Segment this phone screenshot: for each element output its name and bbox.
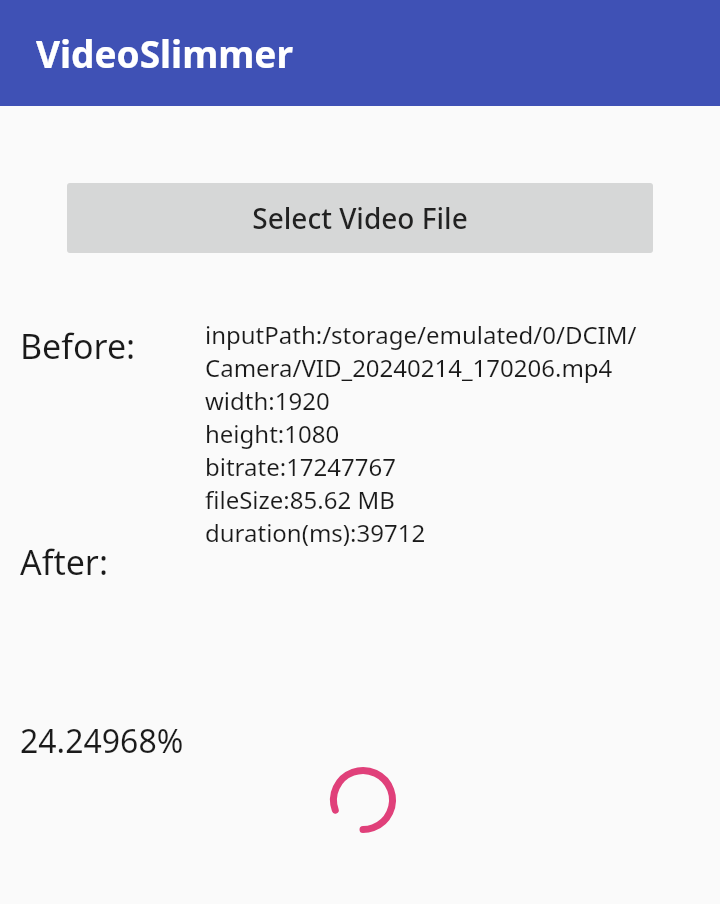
staticText: 24.24968% (20, 719, 184, 763)
staticText: fileSize:85.62 MB (205, 483, 395, 516)
staticText: Camera/VID_20240214_170206.mp4 (205, 351, 613, 384)
button[interactable]: Select Video File (67, 183, 653, 253)
staticText: inputPath:/storage/emulated/0/DCIM/ (205, 318, 637, 351)
staticText: bitrate:17247767 (205, 450, 396, 483)
staticText: height:1080 (205, 417, 340, 450)
staticText: Before: (20, 323, 136, 369)
staticText: VideoSlimmer (36, 28, 293, 78)
staticText: After: (20, 539, 109, 585)
staticText: duration(ms):39712 (205, 516, 426, 549)
other: Loading progress (330, 767, 396, 833)
staticText: Select Video File (252, 199, 468, 237)
staticText: width:1920 (205, 384, 330, 417)
